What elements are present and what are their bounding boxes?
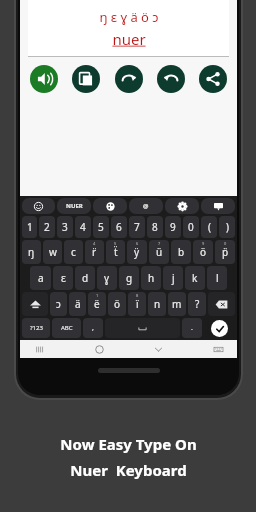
- staticText: l: [216, 271, 219, 285]
- button[interactable]: 7: [129, 216, 145, 238]
- staticText: 5: [98, 220, 104, 234]
- button[interactable]: ä: [69, 292, 86, 316]
- staticText: 1: [27, 220, 33, 234]
- button[interactable]: c: [64, 240, 83, 264]
- button[interactable]: ë: [88, 292, 106, 316]
- button[interactable]: 0: [183, 216, 199, 238]
- staticText: 0: [188, 220, 194, 234]
- button[interactable]: Back: [151, 342, 165, 356]
- button[interactable]: r̈: [85, 240, 104, 264]
- button[interactable]: k: [185, 266, 205, 290]
- button[interactable]: ɔ: [50, 292, 67, 316]
- button[interactable]: ): [219, 216, 235, 238]
- button[interactable]: ŋ ɛ ɣ ä ö ɔ: [28, 0, 229, 56]
- button[interactable]: b: [171, 240, 191, 264]
- staticText: 6: [136, 241, 139, 246]
- button[interactable]: Recents: [32, 342, 46, 356]
- button[interactable]: ,: [83, 318, 103, 338]
- button[interactable]: d: [75, 266, 95, 290]
- staticText: ,: [92, 323, 94, 333]
- staticText: b: [178, 245, 185, 259]
- staticText: 3: [62, 220, 68, 234]
- button[interactable]: (: [201, 216, 217, 238]
- button[interactable]: a: [30, 266, 51, 290]
- button[interactable]: Undo: [157, 65, 185, 93]
- staticText: 8: [152, 220, 158, 234]
- staticText: ä: [75, 297, 81, 311]
- staticText: ë: [94, 297, 100, 311]
- button[interactable]: Keyboard: [211, 342, 225, 356]
- staticText: ): [226, 220, 229, 234]
- staticText: Now Easy Type On: [60, 434, 197, 454]
- staticText: 9: [202, 241, 205, 246]
- button[interactable]: w: [43, 240, 62, 264]
- button[interactable]: ü: [149, 240, 169, 264]
- staticText: ÿ: [134, 245, 140, 259]
- staticText: ŋ: [28, 245, 35, 259]
- staticText: 7: [158, 241, 161, 246]
- button[interactable]: 9: [165, 216, 181, 238]
- staticText: ɣ: [104, 271, 110, 285]
- button[interactable]: ɛ: [53, 266, 73, 290]
- button[interactable]: j: [163, 266, 183, 290]
- button[interactable]: Backspace: [208, 292, 235, 316]
- button[interactable]: Redo: [115, 65, 143, 93]
- button[interactable]: p̈: [215, 240, 235, 264]
- button[interactable]: Space: [105, 318, 180, 338]
- button[interactable]: 6: [111, 216, 127, 238]
- button[interactable]: 4: [75, 216, 91, 238]
- staticText: j: [172, 271, 175, 285]
- button[interactable]: Share: [199, 65, 227, 93]
- staticText: ?: [195, 297, 200, 311]
- button[interactable]: ŋ: [22, 240, 41, 264]
- button[interactable]: Shift: [22, 292, 48, 316]
- button[interactable]: ÿ: [127, 240, 147, 264]
- button[interactable]: Key: [93, 198, 127, 214]
- button[interactable]: @: [129, 198, 163, 214]
- staticText: 1: [96, 293, 99, 298]
- staticText: ï: [136, 297, 139, 311]
- button[interactable]: Key: [22, 198, 55, 214]
- button[interactable]: ɣ: [97, 266, 117, 290]
- staticText: 0: [224, 241, 227, 246]
- button[interactable]: g: [119, 266, 139, 290]
- staticText: g: [126, 271, 133, 285]
- staticText: w: [49, 245, 57, 259]
- button[interactable]: 8: [147, 216, 163, 238]
- button[interactable]: Key: [165, 198, 199, 214]
- button[interactable]: Enter: [211, 320, 228, 337]
- button[interactable]: Copy: [72, 65, 100, 93]
- staticText: 4: [80, 220, 86, 234]
- button[interactable]: ö: [193, 240, 213, 264]
- staticText: m: [172, 297, 182, 311]
- button[interactable]: l: [207, 266, 227, 290]
- button[interactable]: n: [148, 292, 166, 316]
- button[interactable]: Speak: [30, 65, 58, 93]
- button[interactable]: ö: [108, 292, 126, 316]
- button[interactable]: NUER: [57, 198, 91, 214]
- button[interactable]: 1: [22, 216, 37, 238]
- staticText: h: [148, 271, 155, 285]
- button[interactable]: Home: [92, 342, 106, 356]
- button[interactable]: 2: [39, 216, 55, 238]
- button[interactable]: m: [168, 292, 186, 316]
- button[interactable]: Key: [201, 198, 235, 214]
- staticText: 2: [44, 220, 50, 234]
- button[interactable]: 3: [57, 216, 73, 238]
- staticText: (: [208, 220, 211, 234]
- button[interactable]: ABC: [52, 318, 81, 338]
- staticText: 8: [136, 293, 139, 298]
- staticText: d: [82, 271, 89, 285]
- button[interactable]: .: [182, 318, 202, 338]
- staticText: nuer: [112, 29, 146, 49]
- staticText: Nuer Keyboard: [70, 460, 187, 480]
- button[interactable]: h: [141, 266, 161, 290]
- button[interactable]: ẗ: [106, 240, 125, 264]
- staticText: @: [143, 202, 149, 210]
- staticText: ABC: [61, 324, 73, 332]
- button[interactable]: ?: [188, 292, 206, 316]
- staticText: ẗ: [114, 245, 118, 259]
- button[interactable]: ï: [128, 292, 146, 316]
- button[interactable]: 5: [93, 216, 109, 238]
- button[interactable]: ?123: [22, 318, 50, 338]
